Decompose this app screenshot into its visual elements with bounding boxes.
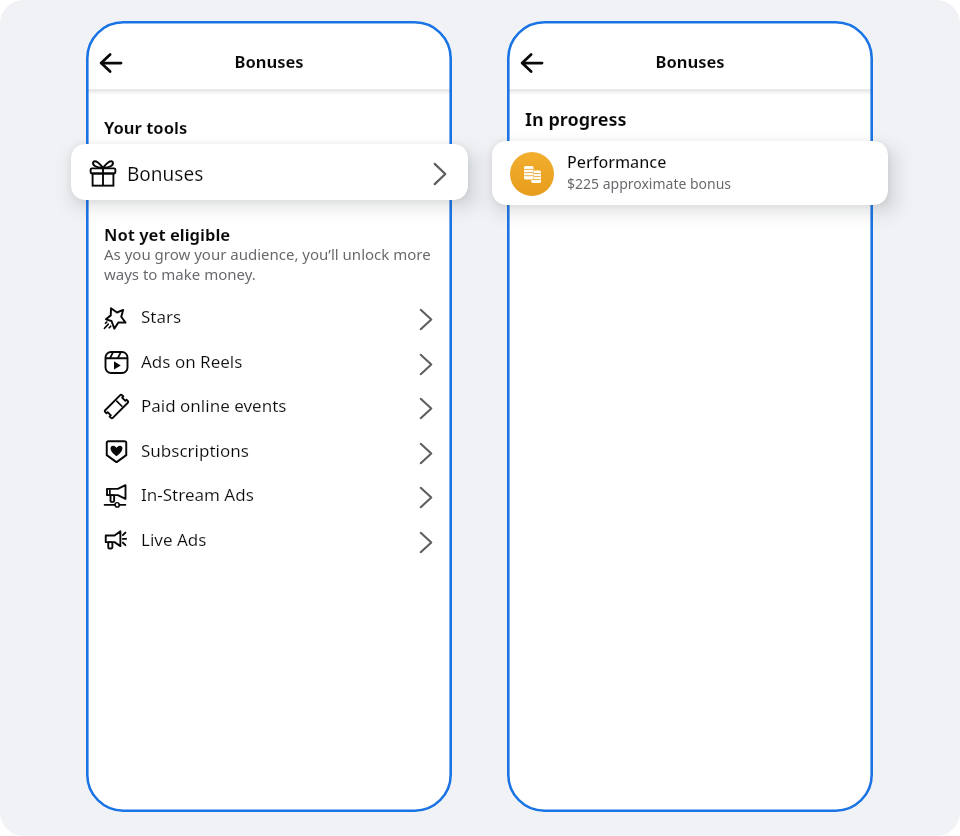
- button[interactable]: Paid online events: [86, 384, 452, 429]
- button[interactable]: In-Stream Ads: [86, 473, 452, 518]
- staticText: Stars: [141, 305, 182, 328]
- button[interactable]: Performance: [492, 141, 888, 205]
- staticText: Performance: [567, 151, 667, 173]
- staticText: Ads on Reels: [141, 350, 243, 373]
- staticText: Live Ads: [141, 528, 207, 551]
- button[interactable]: Stars: [86, 295, 452, 340]
- staticText: As you grow your audience, you’ll unlock…: [104, 244, 438, 284]
- button[interactable]: Live Ads: [86, 518, 452, 563]
- button[interactable]: Bonuses: [71, 144, 468, 200]
- staticText: Your tools: [104, 116, 188, 138]
- staticText: Bonuses: [127, 161, 204, 187]
- staticText: In progress: [525, 107, 627, 132]
- staticText: Not yet eligible: [104, 223, 231, 245]
- button[interactable]: Back: [514, 45, 550, 81]
- staticText: $225 approximate bonus: [567, 174, 732, 193]
- button[interactable]: Subscriptions: [86, 429, 452, 474]
- staticText: Paid online events: [141, 394, 287, 417]
- button[interactable]: Ads on Reels: [86, 340, 452, 385]
- staticText: Subscriptions: [141, 439, 249, 462]
- button[interactable]: Back: [93, 45, 129, 81]
- staticText: In-Stream Ads: [141, 483, 254, 506]
- staticText: Bonuses: [507, 50, 873, 72]
- staticText: Bonuses: [86, 50, 452, 72]
